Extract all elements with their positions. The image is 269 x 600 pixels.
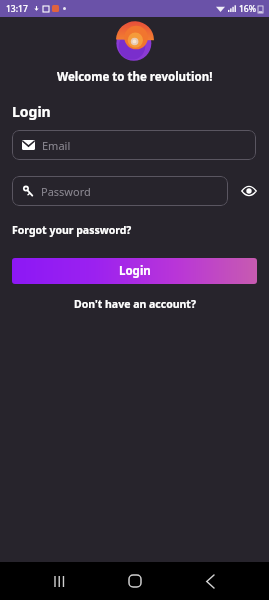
button[interactable]: Recents [42, 564, 76, 598]
staticText: 13:17 [6, 3, 28, 15]
staticText: Email [42, 138, 71, 153]
staticText: Welcome to the revolution! [57, 69, 213, 85]
button[interactable]: Don't have an account? [74, 297, 196, 311]
staticText: Password [41, 184, 91, 199]
button[interactable]: Login [12, 258, 257, 284]
button[interactable]: Back [193, 564, 227, 598]
button[interactable]: Email [12, 130, 256, 160]
staticText: Login [12, 102, 51, 121]
button[interactable]: Forgot your password? [12, 223, 132, 237]
button[interactable]: Show password [239, 181, 259, 201]
staticText: 16% [239, 3, 256, 15]
button[interactable]: Password [12, 176, 228, 206]
button[interactable]: Home [118, 564, 152, 598]
staticText: Login [119, 263, 151, 279]
